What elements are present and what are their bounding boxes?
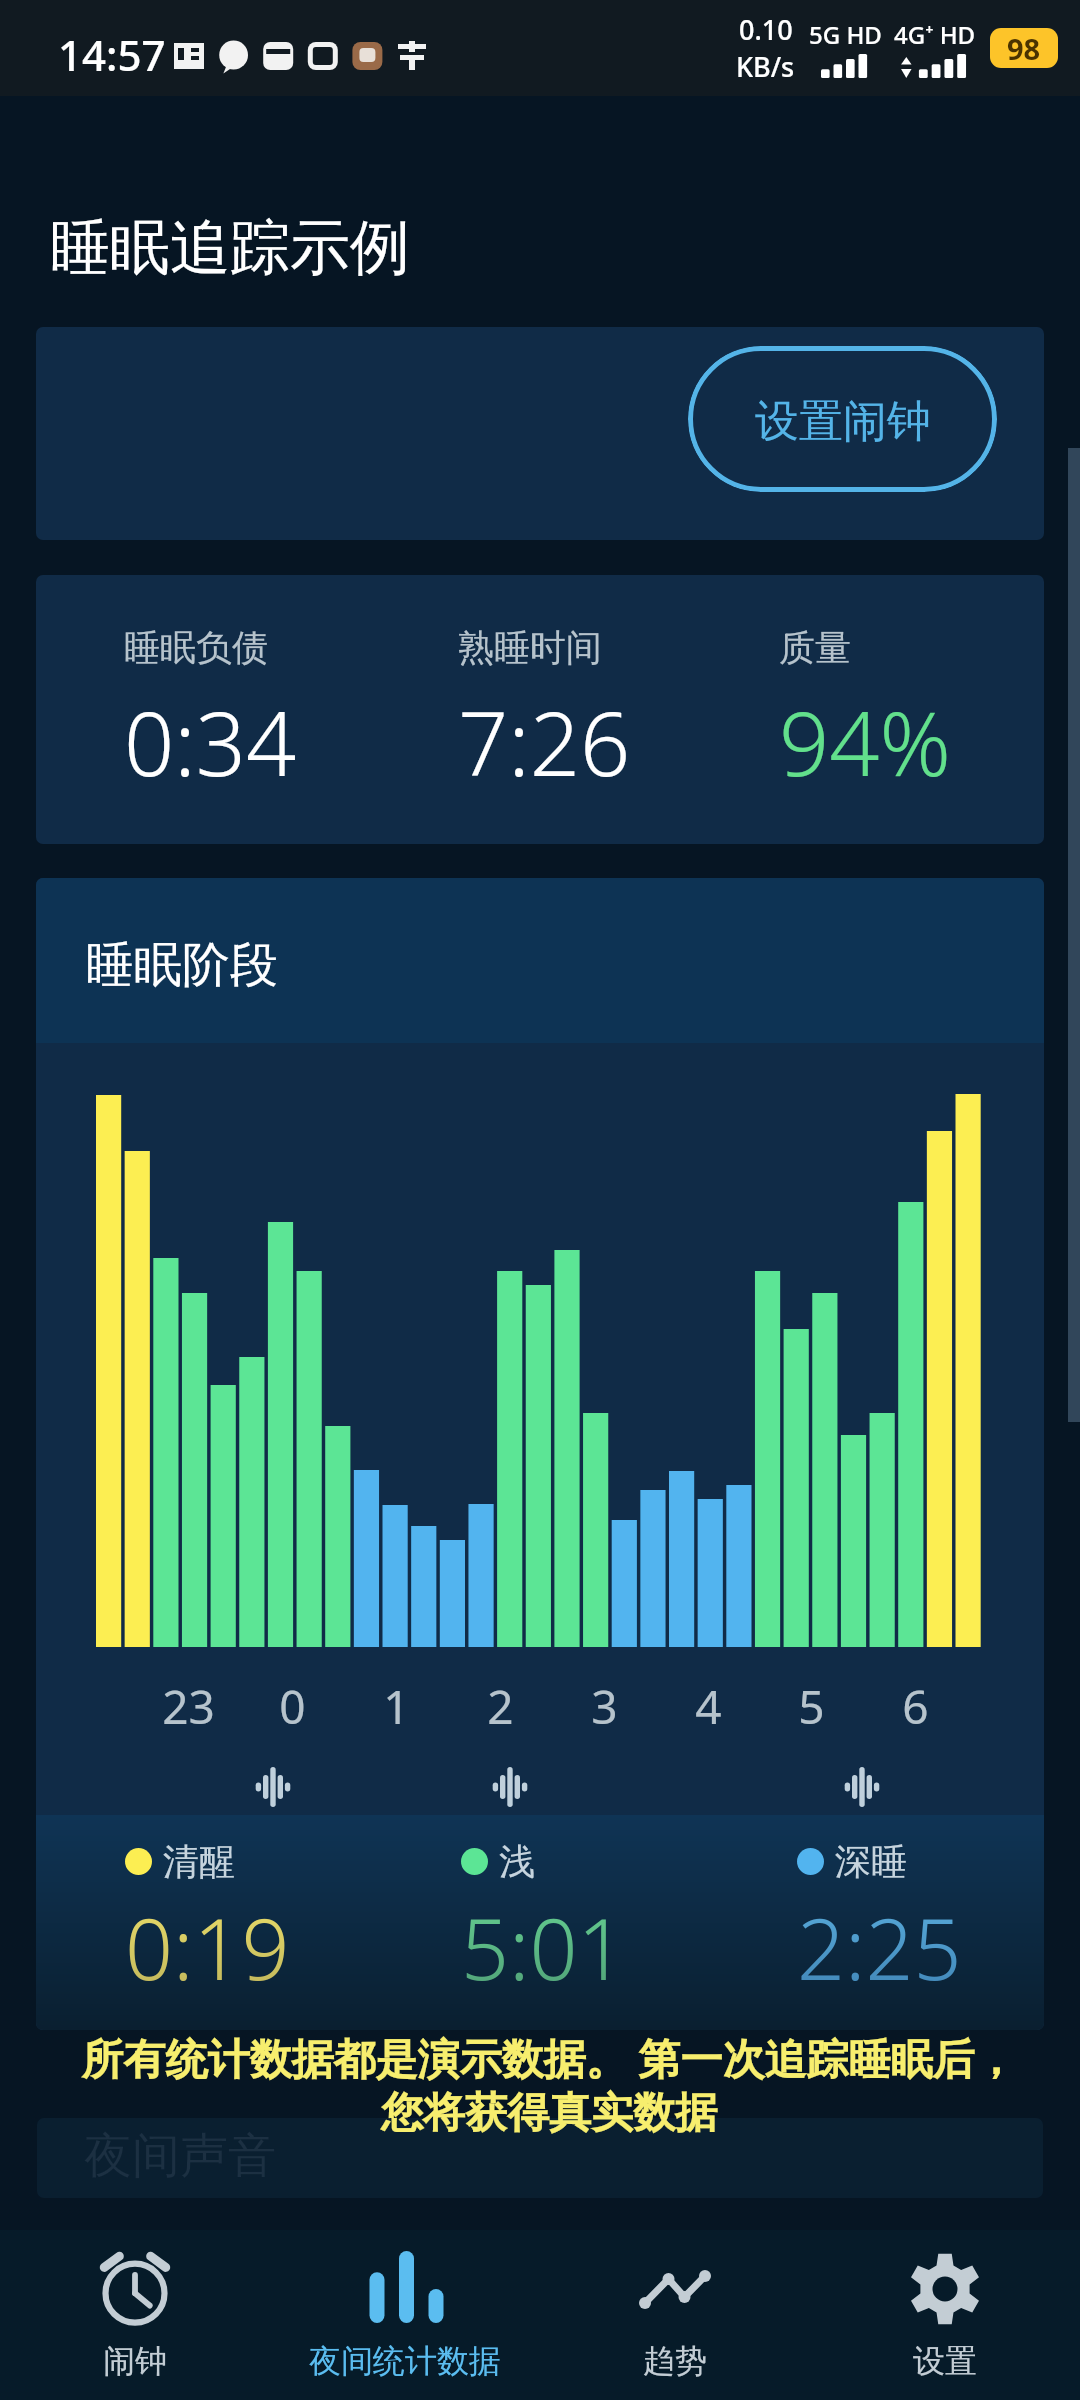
- staticText: 94%: [779, 682, 951, 802]
- staticText: 5:01: [461, 1890, 626, 2004]
- button[interactable]: 设置闹钟: [688, 346, 997, 492]
- staticText: 睡眠阶段: [86, 935, 278, 995]
- staticText: 所有统计数据都是演示数据。 第一次追踪睡眠后， 您将获得真实数据: [29, 2029, 1069, 2139]
- staticText: 0: [279, 1675, 306, 1738]
- staticText: 5G HD: [809, 18, 882, 51]
- button[interactable]: 趋势: [540, 2230, 810, 2400]
- staticText: 睡眠负债: [124, 625, 268, 670]
- staticText: 夜间统计数据: [309, 2341, 501, 2381]
- staticText: 0:34: [124, 682, 297, 802]
- staticText: 4: [695, 1675, 722, 1738]
- staticText: 2: [487, 1675, 514, 1738]
- staticText: KB/s: [736, 48, 795, 85]
- staticText: 夜间声音: [84, 2126, 276, 2186]
- staticText: 14:57: [58, 26, 166, 83]
- staticText: 0.10: [739, 11, 793, 48]
- button[interactable]: 设置: [810, 2230, 1080, 2400]
- staticText: 23: [162, 1675, 215, 1738]
- staticText: 熟睡时间: [458, 625, 602, 670]
- staticText: 深睡: [835, 1839, 907, 1884]
- staticText: 设置闹钟: [755, 394, 931, 449]
- staticText: 清醒: [163, 1839, 235, 1884]
- button[interactable]: 夜间统计数据: [270, 2230, 540, 2400]
- staticText: 6: [902, 1675, 929, 1738]
- staticText: 7:26: [458, 682, 631, 802]
- button[interactable]: 睡眠阶段: [36, 878, 1044, 1043]
- staticText: 5: [798, 1675, 825, 1738]
- staticText: 质量: [779, 625, 851, 670]
- staticText: 趋势: [643, 2341, 707, 2381]
- staticText: 98: [1007, 29, 1041, 68]
- staticText: 浅: [499, 1839, 535, 1884]
- staticText: 睡眠追踪示例: [50, 210, 410, 286]
- staticText: 3: [591, 1675, 618, 1738]
- staticText: 闹钟: [103, 2341, 167, 2381]
- staticText: 0:19: [125, 1890, 290, 2004]
- staticText: 4G⁺ HD: [894, 18, 976, 51]
- staticText: 设置: [913, 2341, 977, 2381]
- staticText: 2:25: [797, 1890, 962, 2004]
- staticText: 1: [383, 1675, 410, 1738]
- button[interactable]: 闹钟: [0, 2230, 270, 2400]
